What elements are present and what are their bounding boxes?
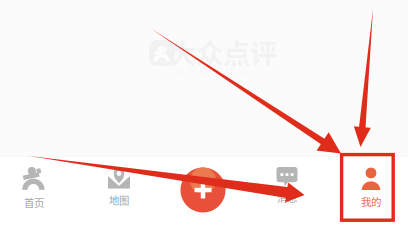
staticText: 首页: [24, 195, 44, 210]
button[interactable]: 首页: [0, 156, 69, 226]
button[interactable]: 添加: [175, 162, 231, 218]
button[interactable]: 地图: [84, 156, 154, 226]
staticText: 大众点评: [169, 32, 277, 72]
staticText: 消息: [277, 190, 297, 205]
staticText: 地图: [109, 192, 129, 208]
staticText: 发 现 品 质 生 活: [174, 63, 250, 79]
button[interactable]: 我的: [336, 156, 406, 226]
button[interactable]: 消息: [252, 156, 322, 226]
staticText: 我的: [361, 194, 381, 209]
